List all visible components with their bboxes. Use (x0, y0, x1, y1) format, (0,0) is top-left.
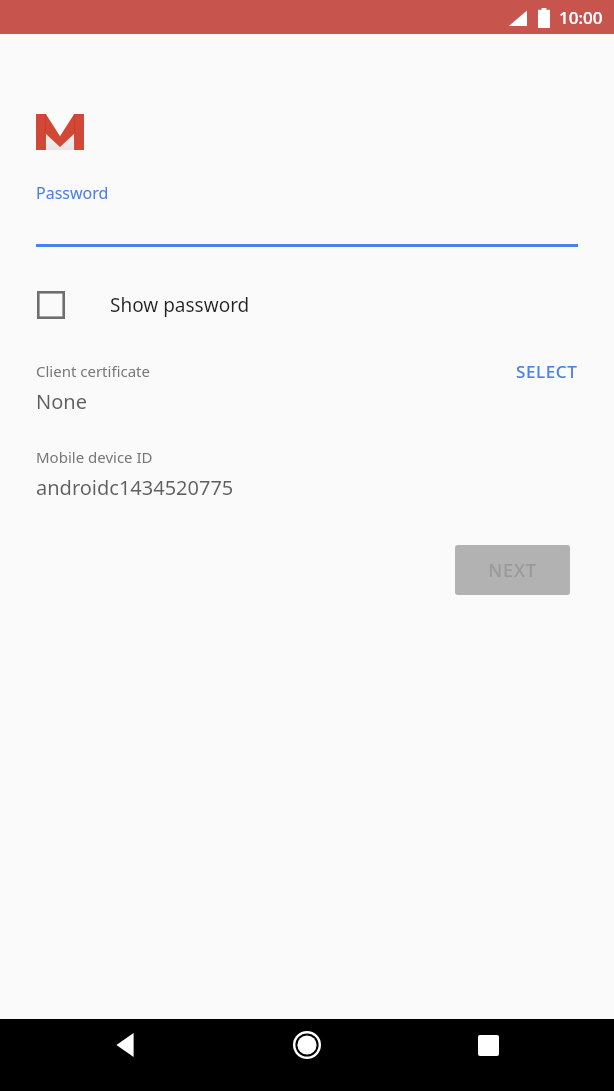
staticText: Client certificate (36, 361, 150, 381)
staticText: Password (36, 182, 109, 204)
staticText: androidc1434520775 (36, 474, 234, 501)
staticText: Show password (110, 292, 250, 318)
staticText: 10:00 (559, 6, 603, 29)
button[interactable]: NEXT (455, 545, 570, 595)
button[interactable]: SELECT (508, 358, 586, 385)
staticText: None (36, 388, 87, 415)
staticText: Mobile device ID (36, 447, 153, 467)
button[interactable]: Back (102, 1021, 150, 1069)
button[interactable]: Home (283, 1021, 331, 1069)
button[interactable]: Show password (0, 287, 614, 323)
button[interactable]: Recent apps (464, 1021, 512, 1069)
staticText: NEXT (488, 558, 537, 583)
staticText: SELECT (516, 360, 578, 383)
